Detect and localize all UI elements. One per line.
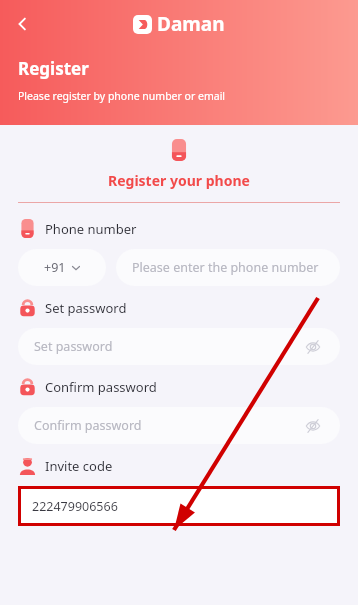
staticText: Confirm password (45, 378, 157, 396)
button[interactable]: Please enter the phone number (116, 249, 340, 286)
staticText: Register (18, 57, 89, 80)
staticText: Set password (45, 299, 127, 317)
button[interactable]: +91 (18, 249, 106, 286)
staticText: Please enter the phone number (132, 259, 319, 276)
button[interactable]: Toggle password visibility (302, 336, 324, 358)
button[interactable]: Back (6, 8, 38, 40)
staticText: Confirm password (34, 417, 142, 434)
button[interactable]: Toggle password visibility (302, 415, 324, 437)
staticText: Register your phone (108, 171, 250, 190)
staticText: 222479906566 (32, 498, 118, 515)
staticText: Set password (34, 338, 113, 355)
staticText: Please register by phone number or email (18, 89, 226, 103)
button[interactable]: Set password (18, 328, 340, 365)
staticText: Daman (157, 11, 225, 37)
staticText: +91 (44, 259, 66, 276)
button[interactable]: 222479906566 (18, 486, 340, 526)
staticText: Phone number (45, 220, 137, 238)
button[interactable]: Confirm password (18, 407, 340, 444)
staticText: Invite code (45, 457, 113, 475)
